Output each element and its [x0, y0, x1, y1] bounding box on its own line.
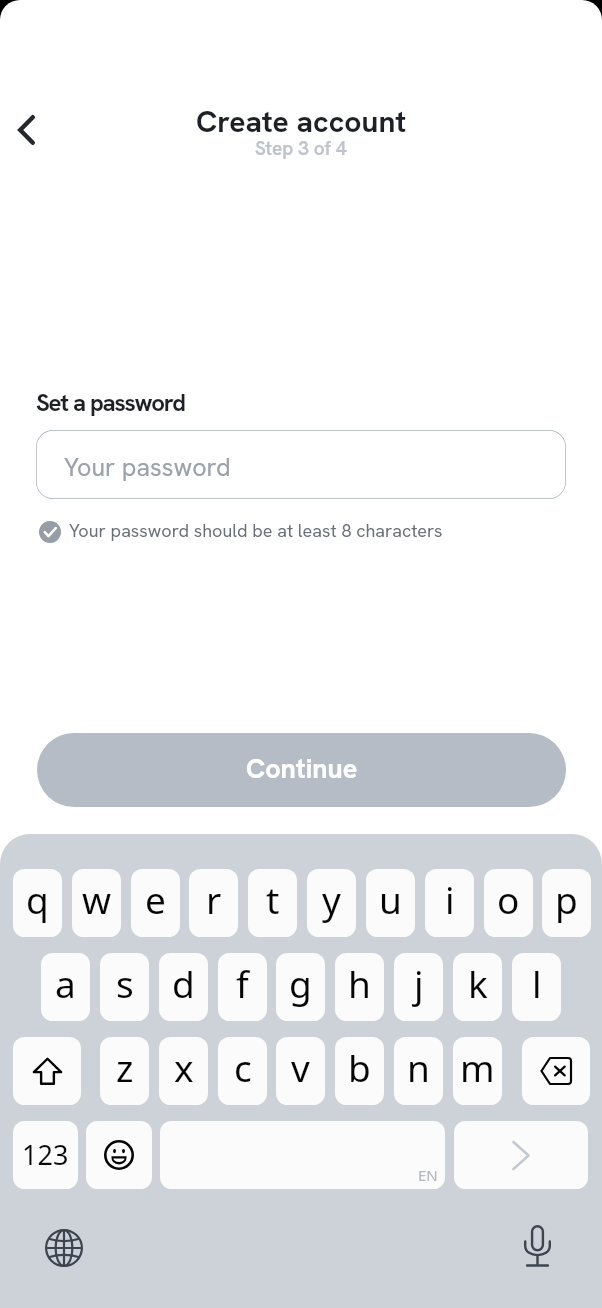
button[interactable]: Space	[160, 1121, 445, 1189]
staticText: Create account	[196, 102, 407, 141]
button[interactable]: z	[100, 1037, 149, 1105]
staticText: s	[116, 958, 134, 1008]
staticText: j	[414, 958, 424, 1008]
button[interactable]: Backspace	[522, 1037, 590, 1105]
staticText: l	[532, 958, 542, 1008]
button[interactable]: u	[366, 869, 415, 937]
staticText: m	[460, 1042, 495, 1092]
staticText: e	[145, 874, 166, 924]
staticText: b	[348, 1042, 371, 1092]
staticText: u	[379, 874, 402, 924]
staticText: EN	[418, 1165, 438, 1185]
staticText: g	[289, 958, 312, 1008]
staticText: f	[236, 958, 249, 1008]
button[interactable]: r	[189, 869, 238, 937]
button[interactable]: Your password	[36, 430, 566, 499]
button[interactable]: Enter	[454, 1121, 588, 1189]
staticText: v	[291, 1042, 310, 1092]
button[interactable]: d	[159, 953, 208, 1021]
button[interactable]: Change keyboard language	[40, 1224, 87, 1271]
staticText: Continue	[246, 751, 358, 786]
staticText: 123	[22, 1136, 69, 1173]
button[interactable]: b	[335, 1037, 384, 1105]
staticText: y	[322, 874, 341, 924]
staticText: z	[116, 1042, 134, 1092]
staticText: w	[82, 874, 112, 924]
staticText: Your password should be at least 8 chara…	[69, 519, 443, 542]
button[interactable]: w	[72, 869, 121, 937]
button[interactable]: q	[13, 869, 62, 937]
staticText: q	[26, 874, 49, 924]
button[interactable]: g	[276, 953, 325, 1021]
button[interactable]: n	[394, 1037, 443, 1105]
button[interactable]: Continue	[37, 733, 566, 807]
button[interactable]: k	[453, 953, 502, 1021]
staticText: r	[206, 874, 222, 924]
staticText: c	[234, 1042, 252, 1092]
staticText: Your password	[64, 451, 231, 484]
button[interactable]: m	[453, 1037, 502, 1105]
button[interactable]: i	[425, 869, 474, 937]
button[interactable]: v	[276, 1037, 325, 1105]
button[interactable]: h	[335, 953, 384, 1021]
staticText: h	[348, 958, 371, 1008]
button[interactable]: Emoji	[86, 1121, 152, 1189]
button[interactable]: p	[542, 869, 591, 937]
button[interactable]: Shift	[13, 1037, 81, 1105]
button[interactable]: c	[218, 1037, 267, 1105]
staticText: Step 3 of 4	[255, 136, 347, 161]
button[interactable]: Voice input	[514, 1222, 561, 1269]
staticText: n	[407, 1042, 430, 1092]
button[interactable]: t	[248, 869, 297, 937]
button[interactable]: x	[159, 1037, 208, 1105]
button[interactable]: f	[218, 953, 267, 1021]
button[interactable]: Numbers and symbols	[13, 1121, 78, 1189]
staticText: x	[174, 1042, 194, 1092]
button[interactable]: l	[512, 953, 561, 1021]
button[interactable]: e	[131, 869, 180, 937]
staticText: k	[468, 958, 488, 1008]
staticText: d	[172, 958, 195, 1008]
staticText: p	[555, 874, 578, 924]
button[interactable]: s	[100, 953, 149, 1021]
staticText: t	[266, 874, 280, 924]
staticText: Set a password	[36, 387, 185, 418]
staticText: o	[497, 874, 520, 924]
button[interactable]: j	[394, 953, 443, 1021]
button[interactable]: a	[41, 953, 90, 1021]
button[interactable]: y	[307, 869, 356, 937]
button[interactable]: Back	[0, 101, 55, 159]
button[interactable]: o	[484, 869, 533, 937]
staticText: i	[445, 874, 455, 924]
staticText: a	[55, 958, 76, 1008]
